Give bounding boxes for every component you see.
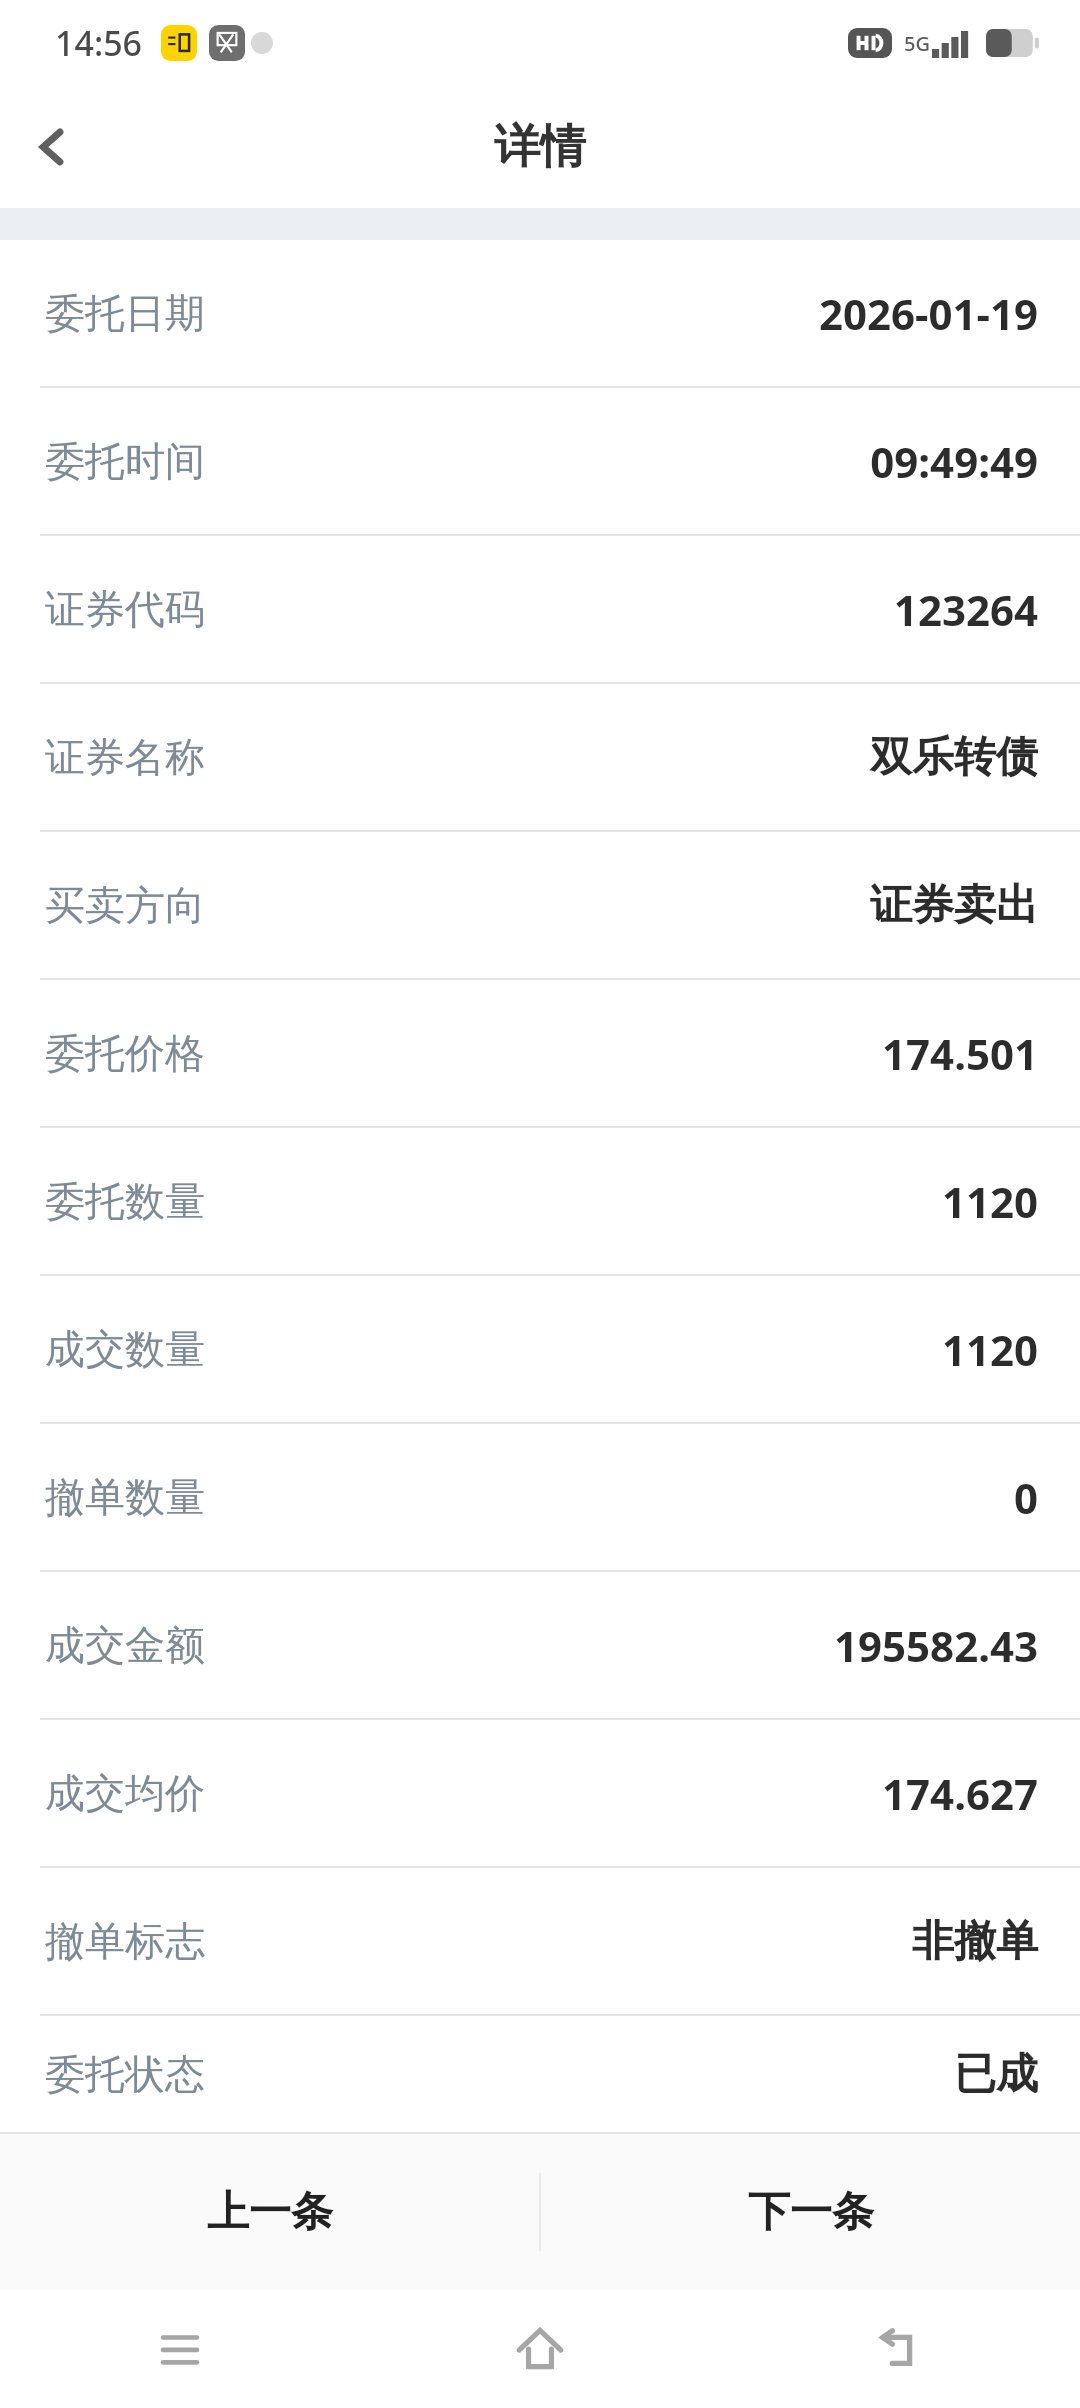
- staticText: 撤单标志: [45, 1916, 205, 1966]
- button[interactable]: 委托状态: [0, 2016, 1080, 2132]
- staticText: 上一条: [207, 2186, 333, 2239]
- button[interactable]: 委托数量: [0, 1128, 1080, 1274]
- staticText: 0: [1013, 1469, 1038, 1526]
- staticText: 证券卖出: [870, 879, 1038, 932]
- staticText: 委托状态: [45, 2049, 205, 2099]
- button[interactable]: 证券代码: [0, 536, 1080, 682]
- button[interactable]: 上一条: [0, 2134, 539, 2290]
- button[interactable]: 撤单数量: [0, 1424, 1080, 1570]
- button[interactable]: 买卖方向: [0, 832, 1080, 978]
- staticText: 已成: [954, 2048, 1038, 2101]
- button[interactable]: Recent apps: [0, 2290, 360, 2408]
- staticText: 195582.43: [834, 1617, 1038, 1674]
- staticText: 成交金额: [45, 1620, 205, 1670]
- button[interactable]: Back: [0, 95, 104, 199]
- staticText: 1120: [941, 1173, 1038, 1230]
- button[interactable]: 成交数量: [0, 1276, 1080, 1422]
- staticText: 123264: [893, 581, 1038, 638]
- staticText: 1120: [941, 1321, 1038, 1378]
- button[interactable]: 委托价格: [0, 980, 1080, 1126]
- staticText: 成交数量: [45, 1324, 205, 1374]
- staticText: 174.627: [882, 1765, 1038, 1822]
- staticText: 成交均价: [45, 1768, 205, 1818]
- staticText: 证券代码: [45, 584, 205, 634]
- staticText: 委托数量: [45, 1176, 205, 1226]
- staticText: 证券名称: [45, 732, 205, 782]
- staticText: 非撤单: [912, 1915, 1038, 1968]
- button[interactable]: 成交均价: [0, 1720, 1080, 1866]
- staticText: 2026-01-19: [818, 285, 1038, 342]
- staticText: 委托价格: [45, 1028, 205, 1078]
- button[interactable]: Back: [720, 2290, 1080, 2408]
- staticText: 委托日期: [45, 288, 205, 338]
- staticText: 09:49:49: [870, 433, 1038, 490]
- staticText: 详情: [494, 118, 586, 176]
- staticText: 14:56: [55, 20, 143, 66]
- staticText: 5G: [904, 30, 930, 57]
- staticText: 双乐转债: [870, 731, 1038, 784]
- button[interactable]: 证券名称: [0, 684, 1080, 830]
- staticText: 委托时间: [45, 436, 205, 486]
- button[interactable]: 委托时间: [0, 388, 1080, 534]
- staticText: 下一条: [748, 2186, 874, 2239]
- staticText: 买卖方向: [45, 880, 205, 930]
- button[interactable]: Home: [360, 2290, 720, 2408]
- button[interactable]: 委托日期: [0, 240, 1080, 386]
- button[interactable]: 成交金额: [0, 1572, 1080, 1718]
- button[interactable]: 下一条: [541, 2134, 1080, 2290]
- button[interactable]: 撤单标志: [0, 1868, 1080, 2014]
- staticText: 174.501: [882, 1025, 1038, 1082]
- staticText: 撤单数量: [45, 1472, 205, 1522]
